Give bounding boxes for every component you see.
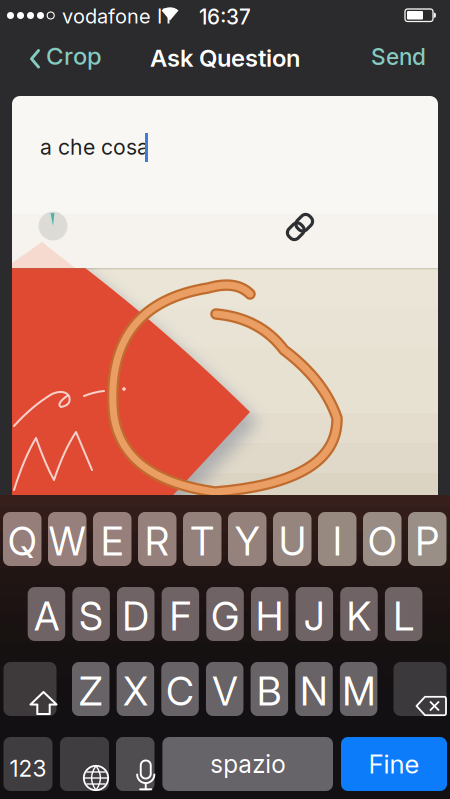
staticText: Crop	[46, 41, 102, 70]
staticText: G	[211, 593, 239, 640]
staticText: B	[257, 668, 282, 715]
button[interactable]: Shift	[3, 662, 56, 716]
button[interactable]: H	[251, 587, 288, 641]
staticText: F	[169, 593, 191, 640]
staticText: A	[34, 593, 59, 640]
button[interactable]: L	[385, 587, 422, 641]
button[interactable]: N	[295, 662, 333, 716]
button[interactable]: Y	[228, 512, 266, 566]
button[interactable]: A	[28, 587, 65, 641]
button[interactable]: W	[48, 512, 86, 566]
staticText: Y	[235, 518, 260, 565]
staticText: N	[300, 668, 328, 715]
button[interactable]: E	[93, 512, 131, 566]
button[interactable]: T	[183, 512, 221, 566]
staticText: R	[145, 518, 170, 565]
button[interactable]: V	[206, 662, 243, 716]
staticText: P	[415, 518, 439, 565]
staticText: vodafone IT	[62, 4, 175, 28]
staticText: 123	[9, 755, 46, 782]
button[interactable]: G	[206, 587, 244, 641]
button[interactable]: J	[296, 587, 333, 641]
button[interactable]: U	[273, 512, 311, 566]
staticText: Q	[8, 518, 37, 565]
button[interactable]: 123	[3, 737, 52, 791]
button[interactable]: Q	[3, 512, 41, 566]
staticText: J	[304, 593, 325, 640]
button[interactable]: Attach link	[280, 207, 320, 247]
button[interactable]: Next keyboard	[60, 737, 109, 791]
button[interactable]: Send	[371, 43, 426, 70]
button[interactable]: spazio	[162, 737, 333, 791]
staticText: E	[101, 518, 124, 565]
button[interactable]: S	[72, 587, 110, 641]
button[interactable]: M	[340, 662, 377, 716]
staticText: Ask Question	[150, 43, 300, 72]
staticText: Send	[371, 43, 426, 70]
button[interactable]: Dictation	[116, 737, 154, 791]
staticText: I	[333, 518, 342, 565]
button[interactable]: C	[161, 662, 199, 716]
staticText: S	[79, 593, 103, 640]
button[interactable]: X	[117, 662, 154, 716]
staticText: 16:37	[199, 4, 251, 29]
staticText: H	[256, 593, 284, 640]
staticText: W	[49, 518, 86, 565]
staticText: spazio	[210, 749, 285, 779]
button[interactable]: P	[408, 512, 446, 566]
staticText: L	[393, 593, 414, 640]
staticText: M	[342, 668, 375, 715]
staticText: Fine	[368, 748, 419, 780]
staticText: X	[123, 668, 148, 715]
button[interactable]: Delete	[393, 662, 446, 716]
staticText: C	[166, 668, 194, 715]
button[interactable]: F	[162, 587, 199, 641]
staticText: D	[122, 593, 149, 640]
staticText: a che cosa	[40, 134, 149, 160]
staticText: K	[346, 593, 371, 640]
button[interactable]: Fine	[341, 737, 447, 791]
staticText: U	[279, 518, 306, 565]
button[interactable]: K	[340, 587, 378, 641]
staticText: Z	[79, 668, 103, 715]
button[interactable]: O	[363, 512, 401, 566]
button[interactable]: D	[117, 587, 154, 641]
button[interactable]: R	[138, 512, 176, 566]
staticText: O	[368, 518, 397, 565]
staticText: T	[190, 518, 214, 565]
button[interactable]: I	[318, 512, 356, 566]
button[interactable]: Back to Crop	[30, 41, 102, 70]
button[interactable]: Z	[72, 662, 109, 716]
staticText: V	[212, 668, 237, 715]
button[interactable]: B	[251, 662, 288, 716]
